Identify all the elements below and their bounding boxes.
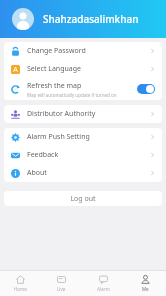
staticText: Home <box>14 286 27 292</box>
other: Profile photo <box>12 8 34 30</box>
staticText: Distributor Authority <box>27 109 96 119</box>
button[interactable]: Alarm <box>82 271 124 296</box>
button[interactable]: Live <box>41 271 82 296</box>
button[interactable]: Change Password <box>4 42 162 60</box>
button[interactable]: Log out <box>4 191 162 206</box>
button[interactable]: Alarm Push Setting <box>4 128 162 146</box>
staticText: About <box>27 168 47 178</box>
staticText: Change Password <box>27 46 86 56</box>
button[interactable]: Feedback <box>4 146 162 164</box>
staticText: Map will automatically update if turned … <box>27 92 117 98</box>
staticText: Me <box>142 286 149 292</box>
staticText: Feedback <box>27 150 59 160</box>
button[interactable]: Select Language <box>4 60 162 78</box>
button[interactable]: Refresh the map <box>4 78 162 100</box>
staticText: Log out <box>70 194 96 204</box>
button[interactable]: Me <box>124 271 166 296</box>
staticText: Refresh the map <box>27 81 82 91</box>
staticText: Alarm Push Setting <box>27 132 90 142</box>
button[interactable]: Home <box>0 271 41 296</box>
staticText: Shahzadasalimkhan <box>43 12 139 26</box>
staticText: Select Language <box>27 64 81 74</box>
button[interactable]: About <box>4 164 162 182</box>
staticText: Live <box>57 286 66 292</box>
staticText: Alarm <box>97 286 110 292</box>
button[interactable]: Distributor Authority <box>4 105 162 123</box>
button[interactable]: Profile photo <box>0 0 166 38</box>
button[interactable]: Refresh the map toggle, on <box>137 84 155 94</box>
